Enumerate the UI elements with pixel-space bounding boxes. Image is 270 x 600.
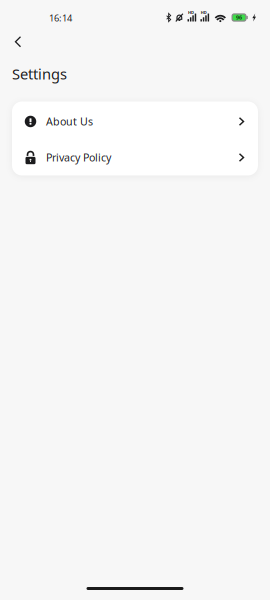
button[interactable]: About Us [12,103,258,139]
staticText: Privacy Policy [46,150,111,165]
staticText: HD [201,10,207,15]
staticText: About Us [46,114,93,129]
staticText: 96 [236,14,242,21]
staticText: Settings [12,64,67,83]
button[interactable]: Back [4,28,32,54]
staticText: HD [188,10,194,15]
button[interactable]: Privacy Policy [12,139,258,175]
staticText: 16:14 [49,12,72,24]
